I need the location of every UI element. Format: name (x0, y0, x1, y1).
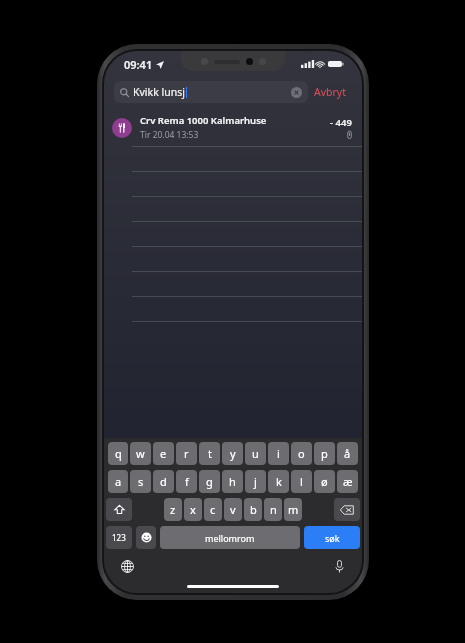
button[interactable]: z (164, 498, 182, 521)
button[interactable]: t (199, 442, 220, 465)
staticText: k (276, 474, 282, 489)
staticText: - 449 (330, 116, 352, 129)
staticText: Kvikk lunsj (133, 85, 185, 99)
staticText: c (210, 502, 216, 517)
button[interactable]: søk (304, 526, 360, 549)
button[interactable]: Crv Rema 1000 Kalmarhuse (104, 109, 362, 147)
staticText: o (298, 446, 305, 461)
button[interactable]: b (244, 498, 262, 521)
button[interactable]: v (224, 498, 242, 521)
button[interactable]: l (291, 470, 312, 493)
staticText: Tir 20.04 13:53 (140, 129, 199, 141)
button[interactable]: Change keyboard language (118, 557, 136, 575)
button[interactable]: r (176, 442, 197, 465)
staticText: a (115, 474, 122, 489)
staticText: q (115, 446, 122, 461)
staticText: p (321, 446, 328, 461)
staticText: m (288, 502, 299, 517)
button[interactable]: q (108, 442, 128, 465)
button[interactable]: e (153, 442, 174, 465)
staticText: u (252, 446, 259, 461)
staticText: e (160, 446, 167, 461)
staticText: z (170, 502, 176, 517)
button[interactable]: x (184, 498, 202, 521)
staticText: søk (325, 532, 340, 544)
staticText: g (206, 474, 213, 489)
button[interactable]: æ (337, 470, 358, 493)
button[interactable]: j (245, 470, 266, 493)
staticText: i (277, 446, 280, 461)
button[interactable]: Emoji (136, 526, 156, 549)
staticText: h (229, 474, 236, 489)
button[interactable]: s (130, 470, 151, 493)
staticText: 123 (112, 532, 126, 543)
staticText: d (160, 474, 167, 489)
staticText: l (300, 474, 303, 489)
staticText: æ (343, 474, 353, 489)
button[interactable]: Clear search (291, 87, 302, 98)
button[interactable]: h (222, 470, 243, 493)
button[interactable]: k (268, 470, 289, 493)
staticText: x (190, 502, 196, 517)
staticText: mellomrom (205, 532, 255, 544)
button[interactable]: g (199, 470, 220, 493)
button[interactable]: d (153, 470, 174, 493)
button[interactable]: o (291, 442, 312, 465)
staticText: f (185, 474, 189, 489)
button[interactable]: m (284, 498, 302, 521)
button[interactable]: a (108, 470, 128, 493)
button[interactable]: ø (314, 470, 335, 493)
button[interactable]: f (176, 470, 197, 493)
staticText: Crv Rema 1000 Kalmarhuse (140, 114, 267, 127)
button[interactable]: Voice input (330, 557, 348, 575)
staticText: t (208, 446, 212, 461)
staticText: ø (321, 474, 328, 489)
staticText: y (230, 446, 236, 461)
staticText: j (254, 474, 257, 489)
staticText: n (270, 502, 277, 517)
button[interactable]: y (222, 442, 243, 465)
staticText: 09:41 (124, 57, 153, 72)
button[interactable]: Backspace (334, 498, 360, 521)
button[interactable]: å (337, 442, 358, 465)
staticText: b (250, 502, 257, 517)
button[interactable]: p (314, 442, 335, 465)
staticText: Avbryt (314, 85, 346, 99)
staticText: r (184, 446, 189, 461)
staticText: s (138, 474, 144, 489)
button[interactable]: Kvikk lunsj (114, 81, 308, 103)
button[interactable]: mellomrom (160, 526, 300, 549)
button[interactable]: c (204, 498, 222, 521)
button[interactable]: i (268, 442, 289, 465)
button[interactable]: Shift (106, 498, 132, 521)
button[interactable]: Avbryt (308, 82, 352, 102)
staticText: å (344, 446, 351, 461)
staticText: v (230, 502, 236, 517)
button[interactable]: u (245, 442, 266, 465)
button[interactable]: n (264, 498, 282, 521)
button[interactable]: 123 (106, 526, 132, 549)
button[interactable]: w (130, 442, 151, 465)
staticText: w (136, 446, 145, 461)
